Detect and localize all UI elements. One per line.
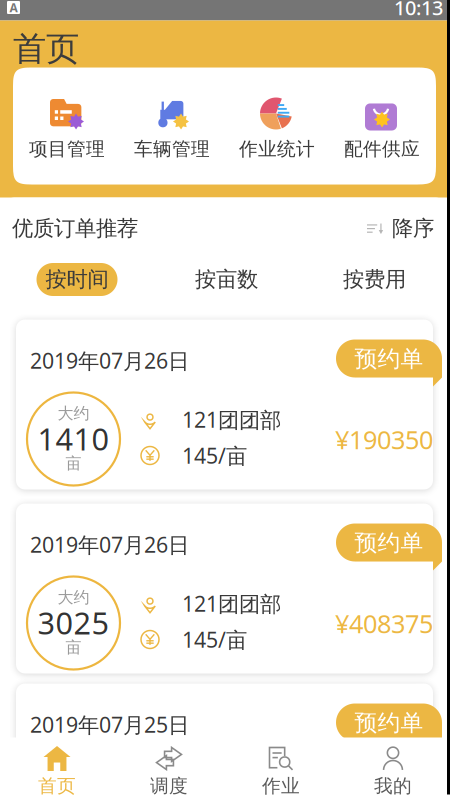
- button[interactable]: 我的: [337, 737, 449, 800]
- staticText: 首页: [38, 774, 76, 797]
- staticText: 预约单: [354, 709, 423, 737]
- staticText: ¥408375: [335, 607, 433, 640]
- staticText: 亩: [65, 638, 81, 657]
- button[interactable]: 调度: [113, 737, 225, 800]
- staticText: 项目管理: [29, 137, 105, 160]
- button[interactable]: 2019年07月25日: [0, 683, 450, 773]
- staticText: 首页: [13, 28, 79, 69]
- button[interactable]: 车辆管理: [119, 67, 224, 184]
- staticText: 配件供应: [344, 137, 420, 160]
- staticText: 121团团部: [182, 405, 281, 434]
- button[interactable]: 配件供应: [329, 67, 434, 184]
- staticText: 作业: [262, 774, 300, 797]
- button[interactable]: 首页: [1, 737, 113, 800]
- staticText: 我的: [374, 774, 412, 797]
- button[interactable]: 按亩数: [154, 251, 299, 307]
- staticText: 145/亩: [182, 441, 247, 470]
- staticText: ¥190350: [335, 423, 433, 456]
- staticText: 1410: [37, 418, 109, 459]
- button[interactable]: 项目管理: [14, 67, 119, 184]
- staticText: 预约单: [354, 529, 423, 557]
- button[interactable]: 作业: [225, 737, 337, 800]
- staticText: 优质订单推荐: [12, 215, 138, 242]
- staticText: 大约: [57, 404, 89, 423]
- staticText: 亩: [65, 454, 81, 473]
- button[interactable]: 按费用: [299, 251, 450, 307]
- staticText: 145/亩: [182, 625, 247, 654]
- button[interactable]: 作业统计: [224, 67, 329, 184]
- button[interactable]: 降序: [367, 209, 434, 248]
- staticText: 预约单: [354, 345, 423, 373]
- staticText: 作业统计: [239, 137, 315, 160]
- staticText: 2019年07月26日: [30, 346, 189, 375]
- staticText: A: [9, 0, 17, 15]
- staticText: 降序: [392, 215, 434, 242]
- staticText: 大约: [57, 588, 89, 607]
- staticText: 10:13: [394, 0, 443, 21]
- staticText: 调度: [150, 774, 188, 797]
- staticText: 2019年07月26日: [30, 530, 189, 559]
- button[interactable]: 按时间: [0, 251, 154, 307]
- staticText: 3025: [37, 602, 109, 643]
- staticText: 按时间: [45, 266, 108, 293]
- button[interactable]: 2019年07月26日: [0, 319, 450, 489]
- staticText: 121团团部: [182, 589, 281, 618]
- staticText: 按费用: [343, 266, 406, 293]
- button[interactable]: 2019年07月26日: [0, 503, 450, 673]
- staticText: 2019年07月25日: [30, 710, 189, 739]
- staticText: 按亩数: [195, 266, 258, 293]
- staticText: 车辆管理: [134, 137, 210, 160]
